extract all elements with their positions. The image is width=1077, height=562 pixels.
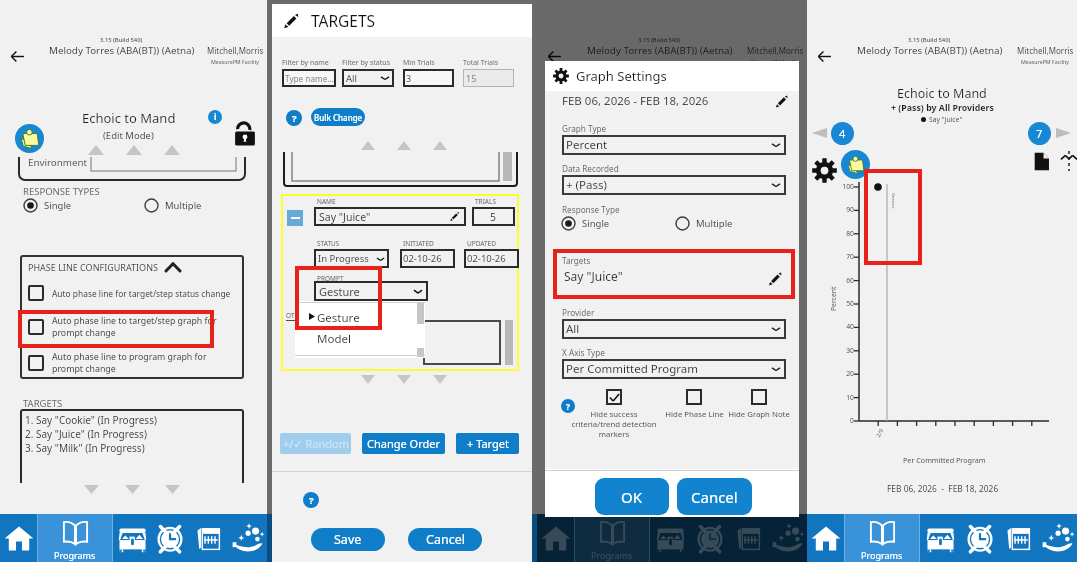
staticText: STATUS [317, 239, 340, 248]
staticText: Echoic to Mand [897, 85, 987, 102]
button[interactable]: Home [537, 514, 574, 562]
button[interactable]: Reinforcers [920, 514, 960, 562]
staticText: + (Pass) by All Providers [891, 102, 994, 114]
button[interactable]: Rewards [768, 514, 807, 562]
staticText: TARGETS [311, 10, 376, 31]
button[interactable]: Remove target [287, 210, 303, 226]
button[interactable]: Info [208, 110, 222, 124]
button[interactable]: Lock [234, 122, 256, 146]
button[interactable]: Graph settings [812, 158, 837, 183]
button[interactable]: Program note [15, 124, 44, 153]
button[interactable]: Back [545, 47, 564, 66]
staticText: 02-10-26 [403, 252, 442, 265]
button[interactable]: Hide success criteria/trend detection ma… [567, 389, 661, 439]
button[interactable]: + Target [456, 433, 519, 454]
button[interactable]: OK [595, 478, 669, 515]
staticText: i [214, 111, 217, 123]
staticText: Auto phase line to target/step graph for… [52, 315, 217, 339]
button[interactable]: Schedule [999, 514, 1038, 562]
button[interactable]: Save [311, 528, 385, 551]
staticText: 4 [839, 126, 846, 141]
button[interactable]: Cancel [408, 528, 482, 551]
staticText: 3.15 (Build 540) [638, 36, 681, 44]
button[interactable]: Programs [38, 514, 112, 562]
staticText: Graph Settings [576, 67, 667, 85]
staticText: PHASE LINE CONFIGURATIONS [28, 261, 158, 273]
button[interactable]: Bulk Change [311, 108, 365, 126]
staticText: Single [582, 217, 610, 230]
button[interactable]: Help [286, 110, 302, 126]
button[interactable]: Programs [575, 514, 649, 562]
staticText: Auto phase line for target/step status c… [52, 288, 231, 299]
button[interactable]: Timer [690, 514, 729, 562]
button[interactable]: Reinforcers [113, 514, 151, 562]
staticText: Cancel [426, 531, 465, 548]
staticText: + (Pass) [566, 177, 607, 193]
button[interactable]: Single [561, 216, 610, 231]
button[interactable]: Schedule [189, 514, 228, 562]
staticText: Programs [591, 549, 633, 561]
staticText: X Axis Type [562, 347, 605, 358]
button[interactable]: Back [815, 47, 834, 66]
staticText: 70 [831, 252, 854, 261]
button[interactable]: Schedule [729, 514, 768, 562]
button[interactable]: Cancel [677, 478, 752, 515]
staticText: RESPONSE TYPES [23, 185, 100, 198]
button[interactable]: Next [1056, 127, 1071, 139]
staticText: FEB 06, 2026 - FEB 18, 2026 [562, 93, 709, 109]
button[interactable]: Timer [151, 514, 189, 562]
button[interactable]: Auto phase line to program graph for pro… [28, 351, 240, 375]
staticText: MeasurePM Facility [1021, 58, 1070, 65]
button[interactable]: Previous [812, 127, 827, 139]
button[interactable]: Change Order [362, 433, 445, 454]
staticText: Hide success criteria/trend detection ma… [571, 409, 657, 439]
staticText: Provider [562, 307, 595, 318]
button[interactable]: Timer [960, 514, 999, 562]
button[interactable]: Rewards [228, 514, 267, 562]
staticText: Single [44, 199, 72, 212]
button[interactable]: Single [23, 198, 72, 213]
button[interactable]: Back [8, 47, 27, 66]
staticText: Targets [562, 255, 591, 266]
button[interactable]: Programs [845, 514, 919, 562]
staticText: Gesture [317, 310, 360, 326]
button[interactable]: Home [0, 514, 37, 562]
button[interactable]: Help [303, 492, 319, 508]
button[interactable]: Rewards [1038, 514, 1077, 562]
staticText: FEB 06, 2026 - FEB 18, 2026 [887, 483, 999, 494]
button[interactable]: 7 [1028, 122, 1051, 145]
staticText: Say "Juice" [929, 115, 963, 124]
button[interactable]: Reinforcers [650, 514, 690, 562]
button[interactable]: Home [807, 514, 844, 562]
button[interactable]: Edit dates [774, 94, 789, 109]
staticText: Total Trials [463, 58, 499, 68]
staticText: 1. Say "Cookie" (In Progress) [25, 413, 157, 427]
staticText: Min Trials [403, 58, 435, 68]
button[interactable]: Expand graph [1059, 151, 1077, 171]
staticText: All [346, 72, 357, 85]
button[interactable]: Help [561, 399, 575, 413]
staticText: Per Committed Program [903, 455, 986, 465]
button[interactable]: Notes [841, 150, 870, 179]
staticText: Melody Torres (ABA(BT)) (Aetna) [49, 44, 195, 57]
button[interactable]: Auto phase line to target/step graph for… [28, 315, 240, 339]
staticText: Change Order [367, 436, 440, 451]
button[interactable]: Gesture [295, 301, 425, 358]
staticText: 80 [831, 229, 854, 238]
staticText: Per Committed Program [566, 361, 698, 377]
staticText: 10 [831, 393, 854, 402]
button[interactable]: Multiple [675, 216, 733, 231]
staticText: Gesture [319, 284, 360, 299]
staticText: 3.15 (Build 540) [100, 36, 143, 44]
button[interactable]: Hide Graph Note [723, 389, 795, 420]
staticText: 2. Say "Juice" (In Progress) [25, 427, 147, 441]
staticText: Cancel [691, 487, 738, 507]
button[interactable]: Hide Phase Line [659, 389, 729, 420]
button[interactable]: +/✓ Random [280, 433, 351, 454]
button[interactable]: Edit targets [767, 271, 783, 287]
button[interactable]: Auto phase line for target/step status c… [28, 285, 240, 301]
button[interactable]: Multiple [144, 198, 202, 213]
button[interactable]: 4 [831, 122, 854, 145]
button[interactable]: Document [1033, 152, 1050, 171]
staticText: Hide Graph Note [728, 409, 790, 420]
